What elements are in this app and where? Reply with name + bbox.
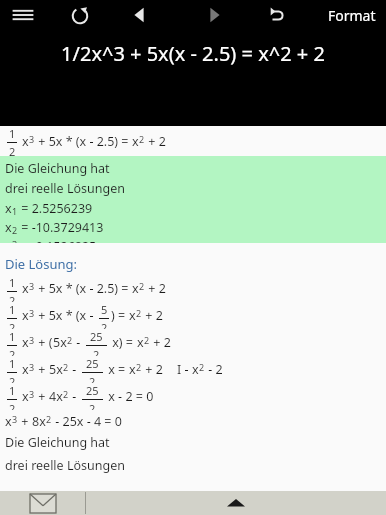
staticText: 2 [89,401,96,410]
staticText: - 25x - 4 = 0 [52,413,122,430]
staticText: 5x [49,361,63,378]
staticText: 1 [9,329,16,344]
staticText: 3 [29,280,35,292]
staticText: 3 [29,307,35,319]
staticText: drei reelle Lösungen [5,180,125,197]
staticText: 3 [12,238,18,243]
staticText: 2 [63,361,69,373]
staticText: + 2 [142,307,163,324]
staticText: + 5x * (x - 2.5) = [35,133,132,150]
staticText: 2 [9,320,16,329]
staticText: 25 [86,383,99,398]
staticText: 5 [101,302,108,317]
staticText: - [69,361,80,378]
staticText: = -0.1526825 [18,238,97,243]
staticText: x [129,307,136,324]
staticText: x = [105,361,129,378]
staticText: x [22,133,29,150]
staticText: drei reelle Lösungen [5,457,125,474]
staticText: 1/2x^3 + 5x(x - 2.5) = x^2 + 2 [61,40,325,67]
staticText: 2 [67,334,73,346]
staticText: 2 [46,413,52,425]
staticText: Die Gleichung hat [5,160,110,177]
staticText: + ( [35,334,53,351]
staticText: x [192,361,199,378]
staticText: 2 [9,293,16,302]
staticText: = 2.5256239 [18,200,93,217]
staticText: 2 [199,361,205,373]
staticText: 1 [9,126,16,141]
staticText: 2 [136,361,142,373]
staticText: 2 [63,388,69,400]
staticText: 2 [136,307,142,319]
staticText: x) = [109,334,137,351]
staticText: + 2 [142,361,163,378]
button[interactable]: Menu [6,1,40,29]
staticText: 2 [9,144,16,156]
staticText: 2 [144,334,150,346]
staticText: + [35,388,49,405]
staticText: 2 [9,374,16,383]
staticText: 2 [9,401,16,410]
staticText: 3 [29,334,35,346]
staticText: Die Gleichung hat [5,434,110,451]
staticText: x - 2 = 0 [105,388,154,405]
staticText: x [129,361,136,378]
staticText: 1 [9,302,16,317]
staticText: + 2 [145,133,166,150]
staticText: - [73,334,84,351]
staticText: I - [177,361,192,378]
staticText: 3 [12,413,18,425]
staticText: - [69,388,80,405]
staticText: + 5x * (x - [35,307,97,324]
staticText: x [5,200,12,217]
button[interactable]: Mail [28,492,58,514]
staticText: 25 [90,329,103,344]
staticText: 25 [86,356,99,371]
staticText: + [18,413,32,430]
staticText: 4x [49,388,63,405]
staticText: + [35,361,49,378]
button[interactable]: Previous [124,1,154,29]
staticText: + 5x * (x - 2.5) = [35,280,132,297]
staticText: 2 [9,347,16,356]
staticText: ) = [111,307,129,324]
staticText: 2 [139,280,145,292]
button[interactable]: Format [328,6,376,25]
staticText: Format [328,6,376,25]
staticText: 2 [89,374,96,383]
staticText: 2 [12,224,18,236]
staticText: 1 [9,383,16,398]
button[interactable]: Recalculate [64,1,96,29]
staticText: + 2 [145,280,166,297]
staticText: 2 [93,347,100,356]
staticText: x [137,334,144,351]
staticText: x [5,413,12,430]
staticText: 1 [12,205,18,217]
staticText: x [22,334,29,351]
staticText: 3 [29,133,35,145]
staticText: x [22,280,29,297]
staticText: + 2 [150,334,171,351]
staticText: 1 [9,356,16,371]
staticText: - 2 [205,361,223,378]
staticText: 1 [9,275,16,290]
staticText: x [22,361,29,378]
staticText: x [22,388,29,405]
staticText: = -10.3729413 [18,219,104,236]
staticText: x [5,219,12,236]
staticText: x [132,133,139,150]
staticText: x [132,280,139,297]
button[interactable]: Next [200,1,230,29]
staticText: 3 [29,388,35,400]
staticText: x [22,307,29,324]
staticText: 2 [101,320,108,329]
button[interactable]: Expand [219,492,253,514]
staticText: 5x [53,334,67,351]
button[interactable]: Undo [260,1,292,29]
staticText: 8x [32,413,46,430]
staticText: 2 [139,133,145,145]
staticText: Die Lösung: [5,255,78,273]
staticText: 3 [29,361,35,373]
